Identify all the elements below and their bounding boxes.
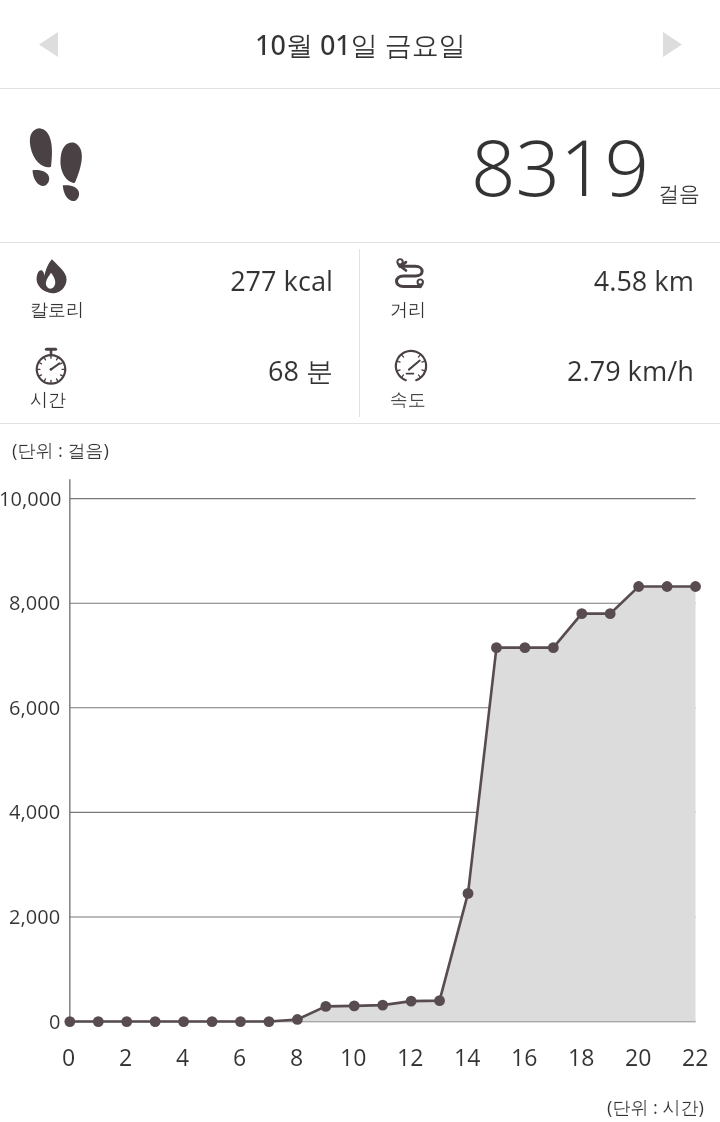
staticText: 2,000 <box>9 903 61 930</box>
staticText: 속도 <box>390 389 426 412</box>
staticText: 18 <box>568 1041 595 1072</box>
button[interactable]: 거리 <box>360 243 720 333</box>
button[interactable]: Next day <box>640 12 704 76</box>
staticText: 277 kcal <box>230 262 333 299</box>
staticText: 20 <box>625 1041 652 1072</box>
staticText: 6,000 <box>9 694 61 721</box>
staticText: 8,000 <box>9 589 61 616</box>
staticText: 칼로리 <box>30 299 84 322</box>
button[interactable]: 시간 <box>0 333 359 423</box>
button[interactable]: Previous day <box>16 12 80 76</box>
staticText: 12 <box>397 1041 424 1072</box>
staticText: 걸음 <box>658 181 700 207</box>
staticText: 10 <box>340 1041 367 1072</box>
staticText: 16 <box>511 1041 538 1072</box>
staticText: 2 <box>119 1041 133 1072</box>
staticText: 0 <box>49 1008 61 1035</box>
staticText: (단위 : 시간) <box>607 1095 704 1120</box>
staticText: (단위 : 걸음) <box>12 438 109 463</box>
staticText: 4 <box>176 1041 190 1072</box>
staticText: 2.79 km/h <box>567 352 694 389</box>
staticText: 0 <box>62 1041 76 1072</box>
staticText: 22 <box>682 1041 709 1072</box>
staticText: 8 <box>290 1041 304 1072</box>
staticText: 시간 <box>30 389 66 412</box>
button[interactable]: 8319 <box>0 89 720 242</box>
staticText: 8319 <box>471 113 650 219</box>
staticText: 10,000 <box>0 485 62 512</box>
staticText: 거리 <box>390 299 426 322</box>
button[interactable]: 칼로리 <box>0 243 359 333</box>
button[interactable]: 속도 <box>360 333 720 423</box>
staticText: 4,000 <box>9 798 61 825</box>
staticText: 10월 01일 금요일 <box>255 26 466 63</box>
staticText: 4.58 km <box>593 262 694 299</box>
staticText: 68 분 <box>268 352 333 389</box>
staticText: 14 <box>454 1041 481 1072</box>
staticText: 6 <box>233 1041 247 1072</box>
